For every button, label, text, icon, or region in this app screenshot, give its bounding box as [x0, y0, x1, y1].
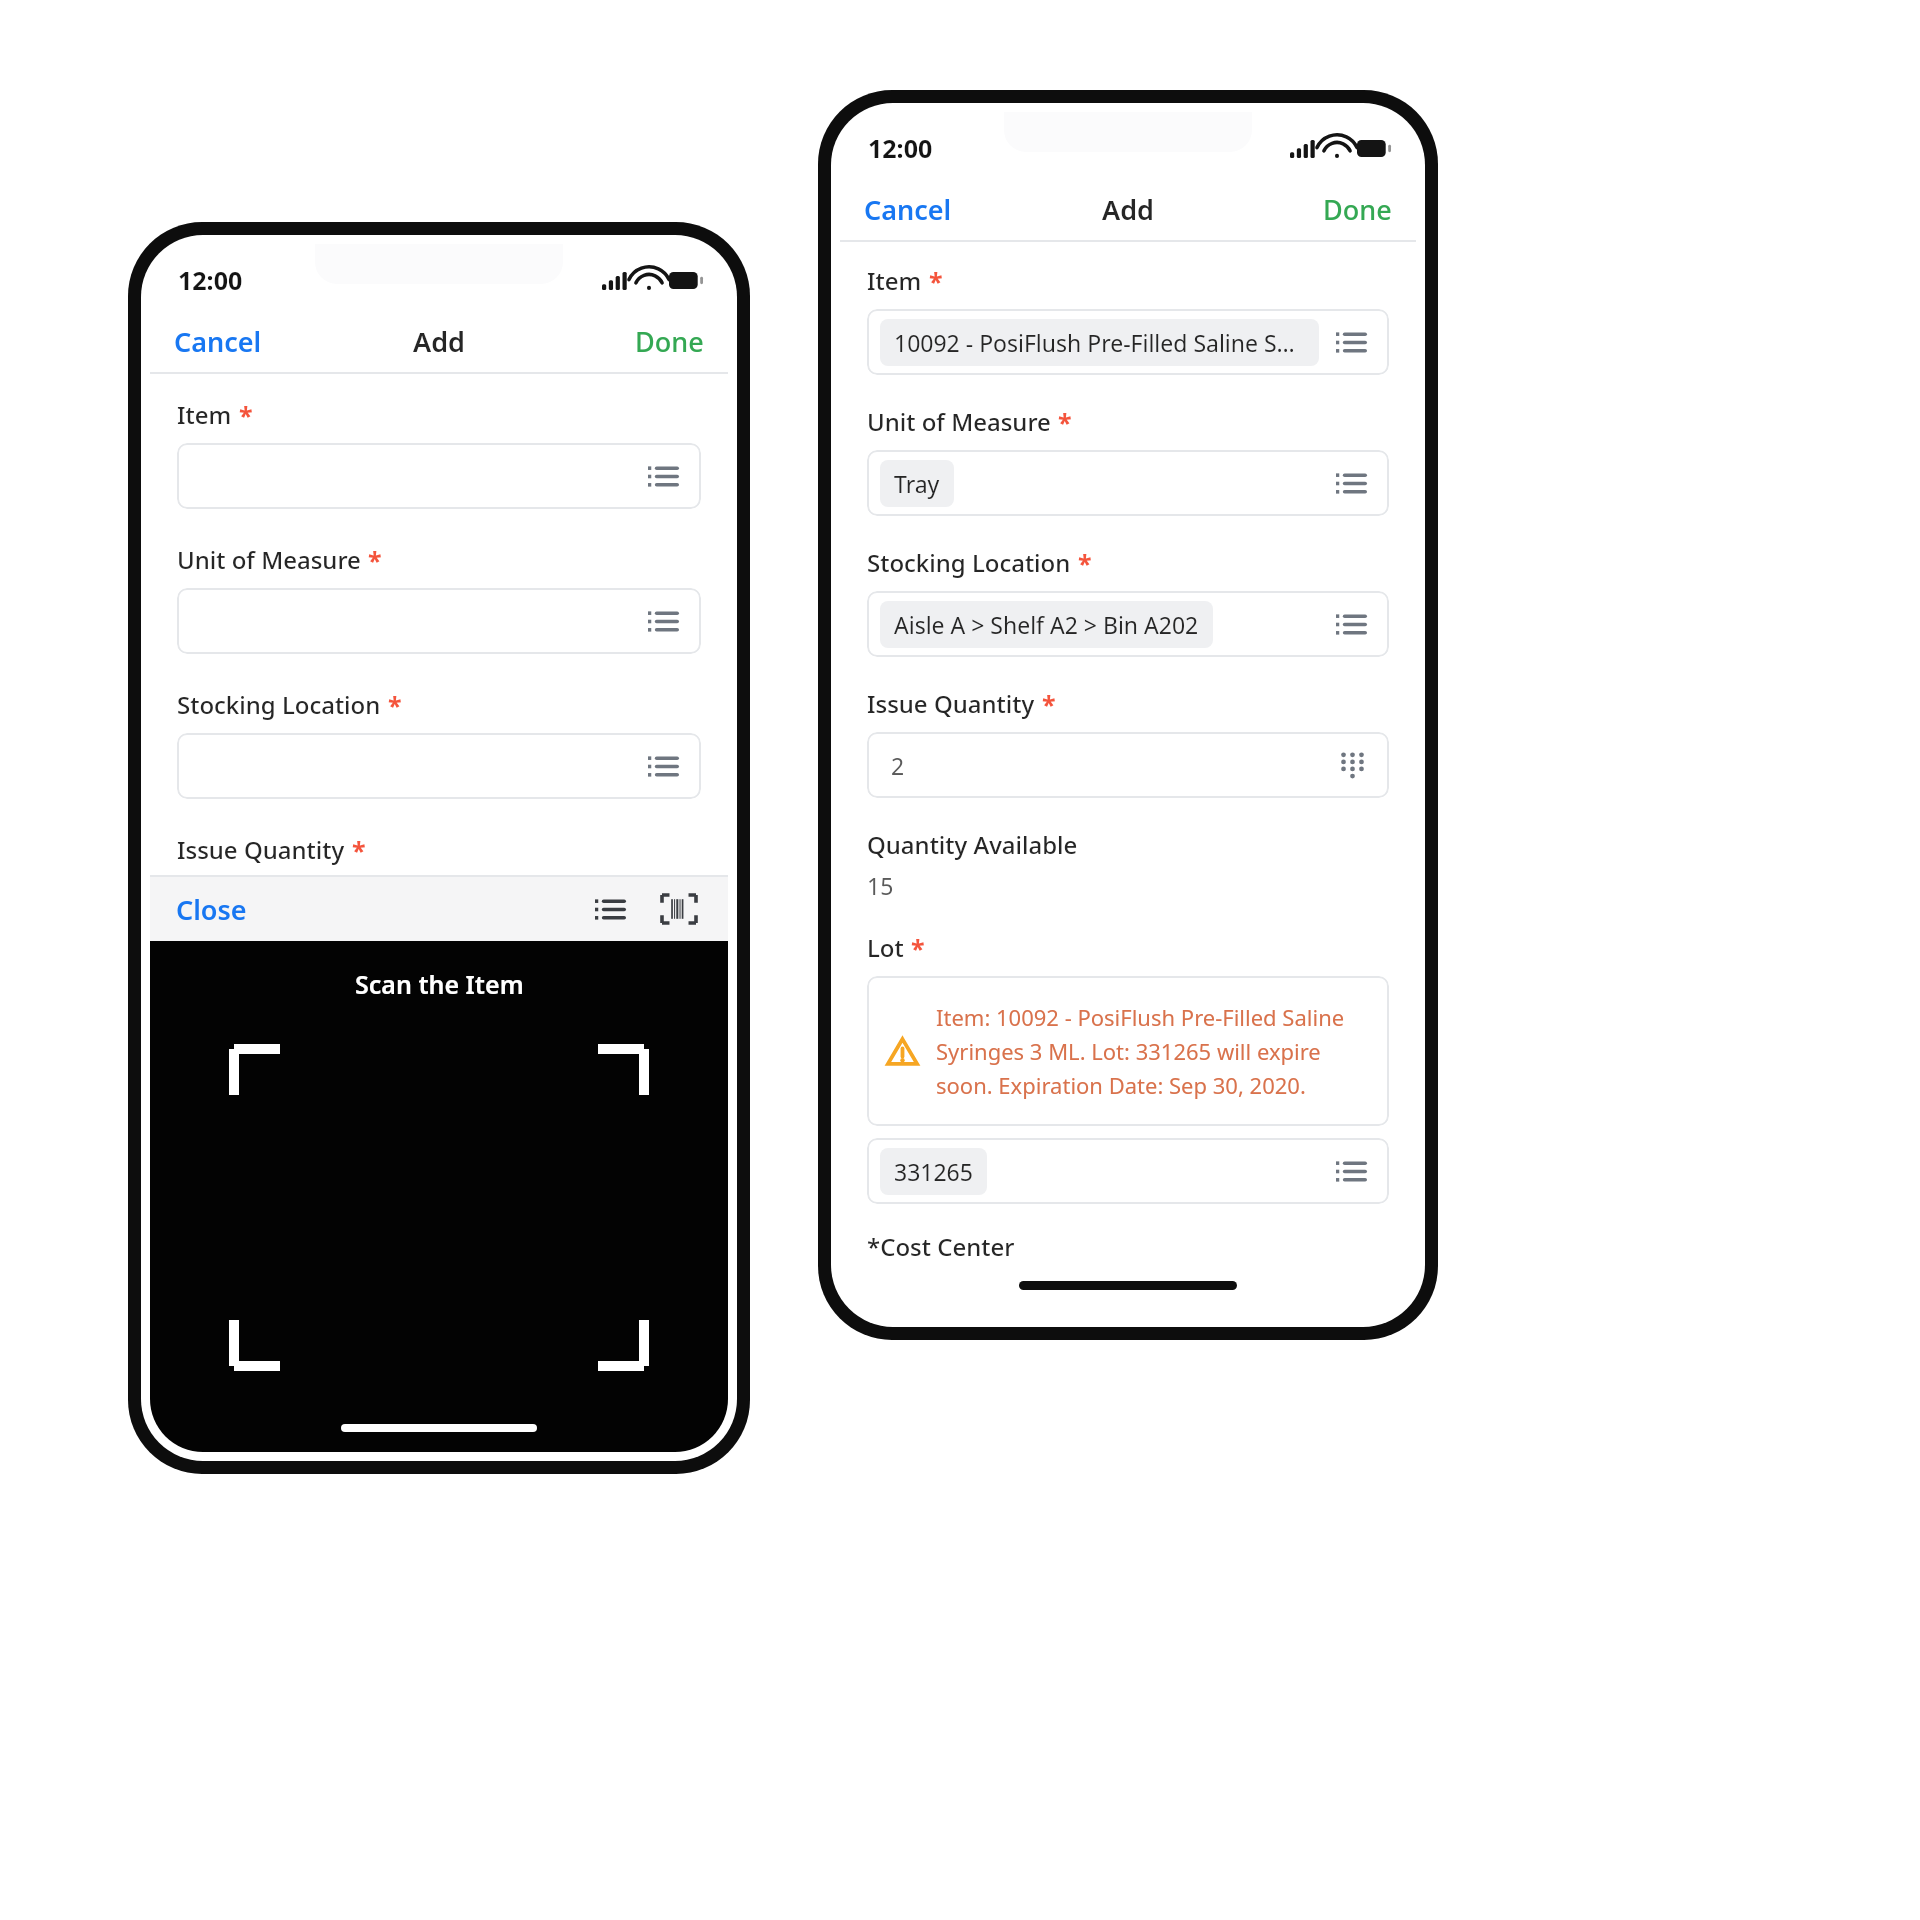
- button[interactable]: Aisle A > Shelf A2 > Bin A202: [867, 591, 1389, 657]
- staticText: 15: [867, 870, 894, 901]
- staticText: Lot: [867, 931, 904, 964]
- other: Choose unit of measure: [1336, 471, 1367, 496]
- staticText: *: [1058, 405, 1072, 439]
- staticText: Aisle A > Shelf A2 > Bin A202: [894, 609, 1199, 640]
- other: Scan barcode: [662, 895, 696, 923]
- button[interactable]: 2: [867, 732, 1389, 798]
- staticText: Tray: [894, 468, 940, 499]
- staticText: 10092 - PosiFlush Pre-Filled Saline Syr…: [894, 327, 1305, 358]
- other: List view: [595, 897, 626, 922]
- staticText: Issue Quantity: [867, 687, 1035, 720]
- staticText: Unit of Measure: [177, 543, 361, 576]
- staticText: Stocking Location: [867, 546, 1071, 579]
- staticText: 12:00: [178, 263, 243, 297]
- staticText: Item: [177, 398, 232, 431]
- staticText: Stocking Location: [177, 688, 381, 721]
- button[interactable]: Choose Stocking Location: [177, 733, 701, 799]
- other: Number pad: [1338, 751, 1367, 780]
- button[interactable]: Scan barcode: [654, 887, 704, 931]
- staticText: *: [388, 688, 402, 722]
- staticText: *: [929, 264, 943, 298]
- other: Choose Unit of Measure: [648, 609, 679, 634]
- button[interactable]: Choose Item: [177, 443, 701, 509]
- staticText: Quantity Available: [867, 828, 1078, 861]
- staticText: Add: [413, 323, 465, 360]
- button[interactable]: Choose Unit of Measure: [177, 588, 701, 654]
- other: Choose lot: [1336, 1159, 1367, 1184]
- other: Choose item: [1336, 330, 1367, 355]
- staticText: 12:00: [868, 131, 933, 165]
- button[interactable]: Cancel: [840, 183, 964, 236]
- button[interactable]: Done: [1311, 183, 1416, 236]
- button[interactable]: 331265: [867, 1138, 1389, 1204]
- staticText: Add: [1102, 191, 1154, 228]
- button[interactable]: List view: [587, 889, 634, 930]
- button[interactable]: Tray: [867, 450, 1389, 516]
- staticText: *: [1078, 546, 1092, 580]
- button[interactable]: Done: [623, 315, 728, 368]
- other: Choose Stocking Location: [648, 754, 679, 779]
- staticText: *: [239, 398, 253, 432]
- button[interactable]: Cancel: [150, 315, 274, 368]
- button[interactable]: 10092 - PosiFlush Pre-Filled Saline Syr…: [867, 309, 1389, 375]
- staticText: 2: [891, 750, 905, 781]
- staticText: *: [1042, 687, 1056, 721]
- other: Choose stocking location: [1336, 612, 1367, 637]
- staticText: *: [352, 833, 366, 867]
- staticText: *Cost Center: [867, 1230, 1015, 1263]
- button[interactable]: Close: [174, 881, 249, 938]
- staticText: 331265: [894, 1156, 973, 1187]
- staticText: Scan the Item: [355, 967, 524, 1001]
- other: Choose Item: [648, 464, 679, 489]
- staticText: *: [368, 543, 382, 577]
- staticText: Item: 10092 - PosiFlush Pre-Filled Salin…: [936, 1002, 1369, 1100]
- staticText: Item: [867, 264, 922, 297]
- staticText: Unit of Measure: [867, 405, 1051, 438]
- staticText: *: [911, 931, 925, 965]
- staticText: Issue Quantity: [177, 833, 345, 866]
